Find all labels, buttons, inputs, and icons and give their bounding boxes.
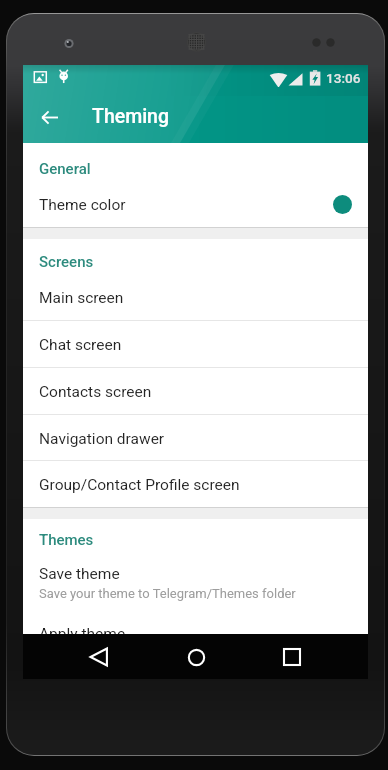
staticText: 13:06 [326,70,361,86]
staticText: Navigation drawer [39,430,165,448]
staticText: Main screen [39,289,124,307]
staticText: Theme color [39,196,126,214]
button[interactable]: Home [175,636,217,678]
button[interactable]: Apply theme [23,610,368,657]
staticText: Themes [39,531,94,549]
staticText: Screens [39,253,94,271]
staticText: Group/Contact Profile screen [39,476,240,494]
staticText: Save theme [39,565,120,583]
button[interactable]: Back [78,636,120,678]
button[interactable]: Chat screen [23,321,368,368]
staticText: General [39,160,91,178]
staticText: Save your theme to Telegram/Themes folde… [39,586,296,601]
button[interactable]: Theme color [23,181,368,228]
button[interactable]: Save theme [23,551,368,611]
staticText: Contacts screen [39,383,152,401]
button[interactable]: Group/Contact Profile screen [23,461,368,508]
button[interactable]: Navigation drawer [23,415,368,462]
button[interactable]: Contacts screen [23,368,368,415]
button[interactable]: Back [32,100,66,134]
staticText: Apply theme [39,625,126,643]
button[interactable]: Main screen [23,274,368,321]
staticText: Chat screen [39,336,122,354]
button[interactable]: Recents [271,636,313,678]
staticText: Theming [92,105,170,128]
